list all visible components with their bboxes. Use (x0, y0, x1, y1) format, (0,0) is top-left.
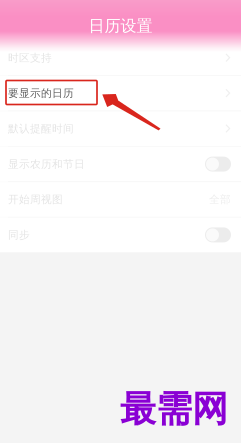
staticText: 要显示的日历 (8, 87, 74, 100)
staticText: 时区支持 (8, 51, 52, 64)
staticText: 同步 (8, 228, 30, 241)
button[interactable]: 默认提醒时间 (0, 111, 241, 146)
button[interactable]: 同步 (0, 217, 241, 252)
staticText: 最需网 (120, 387, 228, 431)
staticText: 开始周视图 (8, 193, 63, 206)
staticText: 显示农历和节日 (8, 157, 85, 171)
button[interactable]: 要显示的日历 (0, 76, 241, 111)
staticText: 默认提醒时间 (8, 122, 74, 135)
button[interactable]: 显示农历和节日 (0, 147, 241, 181)
staticText: 全部 (209, 193, 231, 206)
button[interactable]: 时区支持 (0, 40, 241, 75)
staticText: 日历设置 (88, 16, 152, 36)
